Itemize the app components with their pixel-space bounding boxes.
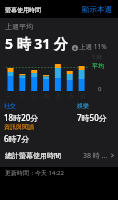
staticText: 顯示本週 [82,5,112,14]
staticText: 平均 [92,62,104,70]
staticText: 5 時 [92,53,103,61]
button[interactable]: 社交 [4,102,39,123]
staticText: 社交 [4,102,16,110]
staticText: 螢幕使用時間 [5,6,41,14]
button[interactable]: 娛樂 [77,102,107,123]
button[interactable]: 資訊與閱讀 [4,123,34,144]
staticText: 更新時間：今天 14:22 [5,169,64,177]
staticText: 資訊與閱讀 [4,123,34,131]
staticText: 38 時 … [83,151,108,161]
staticText: 總計螢幕使用時間 [5,151,61,160]
staticText: 六 [69,93,74,99]
staticText: 四 [44,93,49,99]
staticText: 五 [56,93,61,99]
staticText: 6時7分 [4,133,30,144]
staticText: 18時20分 [4,112,39,123]
staticText: 三 [31,93,36,99]
staticText: 5 時 31 分 [5,34,68,53]
staticText: 娛樂 [77,102,89,110]
button[interactable]: 總計螢幕使用時間 [0,148,118,163]
staticText: 7時50分 [77,112,107,123]
staticText: 0 [98,85,102,93]
staticText: 上週平均 [5,22,33,31]
staticText: 日 [81,93,86,99]
button[interactable]: 顯示本週 [81,5,113,14]
staticText: 上週 11% [79,42,107,51]
